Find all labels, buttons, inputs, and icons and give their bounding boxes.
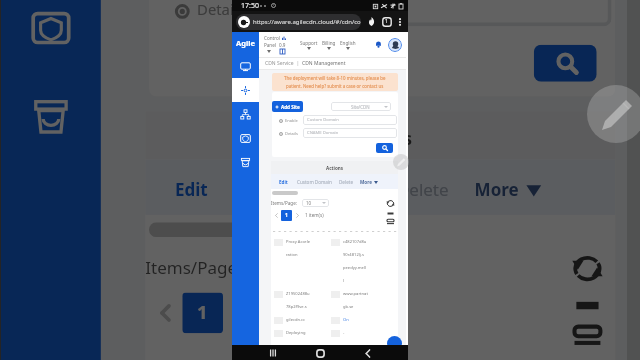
button[interactable]: Add Site bbox=[272, 101, 303, 112]
staticText: CDN Management bbox=[302, 60, 346, 67]
button[interactable]: Edit bbox=[279, 179, 288, 185]
staticText: 1 item(s) bbox=[271, 300, 341, 322]
button[interactable]: Recents bbox=[266, 346, 280, 360]
button[interactable]: 10 bbox=[302, 199, 329, 207]
staticText: www.partnat bbox=[343, 291, 368, 297]
button[interactable]: Search bbox=[534, 45, 597, 82]
staticText: https://aware.agilecdn.cloud/#/cdn/co bbox=[253, 18, 361, 26]
button[interactable]: Tabs bbox=[380, 15, 393, 28]
button[interactable]: More bbox=[475, 178, 541, 200]
staticText: 90r4812lj.s bbox=[343, 252, 364, 258]
button[interactable]: More bbox=[360, 179, 378, 185]
staticText: The deployment will take 8-10 minutes, p… bbox=[284, 75, 386, 81]
button[interactable]: 1 bbox=[182, 293, 223, 333]
button[interactable]: Site/CDN bbox=[331, 102, 391, 111]
button[interactable]: Notifications bbox=[374, 40, 383, 49]
staticText: l bbox=[343, 278, 345, 284]
button[interactable]: English bbox=[340, 40, 356, 50]
staticText: Actions bbox=[326, 165, 344, 171]
button[interactable]: CNAME Domain bbox=[264, 0, 611, 26]
staticText: Control bbox=[264, 35, 280, 41]
staticText: - bbox=[343, 330, 345, 336]
staticText: peedyy.mell bbox=[343, 265, 367, 271]
button[interactable]: Billing bbox=[322, 40, 336, 50]
button[interactable]: Menu item 1 bbox=[232, 54, 259, 78]
staticText: Panel bbox=[264, 42, 276, 48]
staticText: Details bbox=[197, 0, 245, 19]
staticText: CDN Service bbox=[265, 60, 294, 67]
staticText: Agile bbox=[236, 38, 255, 48]
button[interactable]: Search bbox=[376, 143, 393, 153]
button[interactable]: Menu item 2 bbox=[232, 78, 259, 102]
button[interactable]: Window bbox=[386, 220, 395, 221]
button[interactable]: Next page bbox=[223, 293, 260, 333]
button[interactable]: Menu item 3 bbox=[232, 102, 259, 126]
button[interactable]: Custom Domain bbox=[241, 178, 371, 200]
button[interactable]: Custom Domain bbox=[303, 115, 397, 125]
staticText: Proxy Accele bbox=[286, 239, 311, 245]
staticText: Add Site bbox=[281, 104, 300, 110]
button[interactable]: Next page bbox=[292, 210, 302, 221]
staticText: Enable bbox=[285, 118, 298, 123]
staticText: On bbox=[343, 317, 349, 323]
staticText: Actions bbox=[349, 126, 415, 148]
staticText: Items/Page: bbox=[145, 256, 245, 278]
staticText: Site/CDN bbox=[351, 104, 370, 110]
button[interactable]: Refresh bbox=[386, 199, 395, 208]
button[interactable]: 10 bbox=[260, 252, 360, 281]
button[interactable]: Flame bbox=[365, 15, 378, 28]
button[interactable]: Menu item 4 bbox=[1, 0, 101, 71]
button[interactable]: Collapse bbox=[386, 209, 395, 218]
staticText: c482107d8u bbox=[343, 239, 367, 245]
button[interactable]: Edit pointer large bbox=[587, 85, 640, 143]
button[interactable]: Delete bbox=[339, 179, 353, 185]
staticText: Details bbox=[285, 131, 298, 136]
staticText: ration bbox=[286, 252, 298, 258]
button[interactable]: Delete bbox=[397, 178, 449, 200]
button[interactable]: Menu item 4 bbox=[232, 126, 259, 150]
button[interactable]: Back bbox=[361, 346, 375, 360]
staticText: Deploying bbox=[286, 330, 306, 336]
staticText: Support bbox=[300, 40, 318, 46]
button[interactable]: More options bbox=[394, 16, 405, 27]
staticText: | bbox=[294, 60, 302, 67]
staticText: Billing bbox=[322, 40, 336, 46]
button[interactable]: Edit pointer bbox=[393, 154, 409, 170]
staticText: More bbox=[360, 179, 372, 185]
button[interactable]: https://aware.agilecdn.cloud/#/cdn/co bbox=[236, 14, 361, 30]
staticText: 1 bbox=[197, 300, 208, 326]
staticText: 78p2f9ve.s bbox=[286, 304, 307, 310]
button[interactable]: Support bbox=[300, 40, 318, 50]
button[interactable]: Collapse bbox=[571, 289, 604, 322]
staticText: English bbox=[340, 40, 356, 46]
staticText: 0.9 bbox=[279, 42, 286, 48]
button[interactable]: Previous page bbox=[271, 210, 281, 221]
staticText: More bbox=[475, 178, 519, 200]
button[interactable]: Help bbox=[387, 336, 402, 351]
staticText: patient. Need help? submit a case or con… bbox=[286, 83, 384, 89]
button[interactable]: Refresh bbox=[571, 252, 604, 285]
staticText: 17:50 bbox=[241, 1, 259, 11]
staticText: Z19502488u bbox=[286, 291, 310, 297]
staticText: gilecdn.cc bbox=[286, 317, 305, 323]
staticText: Items/Page: bbox=[271, 200, 298, 206]
staticText: 1 bbox=[285, 212, 288, 219]
button[interactable]: Custom Domain bbox=[297, 179, 332, 185]
button[interactable]: Home bbox=[313, 346, 327, 360]
button[interactable]: Menu item 5 bbox=[232, 150, 259, 174]
button[interactable]: CNAME Domain bbox=[303, 128, 397, 138]
staticText: Custom Domain bbox=[307, 117, 339, 123]
staticText: CNAME Domain bbox=[278, 0, 397, 19]
button[interactable]: Edit bbox=[175, 178, 208, 200]
button[interactable]: Previous page bbox=[145, 293, 182, 333]
staticText: 1 item(s) bbox=[305, 212, 324, 218]
button[interactable]: 1 bbox=[281, 210, 292, 221]
staticText: 1 bbox=[385, 18, 388, 25]
staticText: CNAME Domain bbox=[307, 130, 339, 136]
staticText: 10 bbox=[306, 200, 312, 206]
button[interactable]: Window bbox=[571, 330, 604, 333]
button[interactable]: Menu item 5 bbox=[1, 71, 101, 159]
button[interactable]: Profile bbox=[388, 38, 402, 52]
staticText: gb.se bbox=[343, 304, 354, 310]
